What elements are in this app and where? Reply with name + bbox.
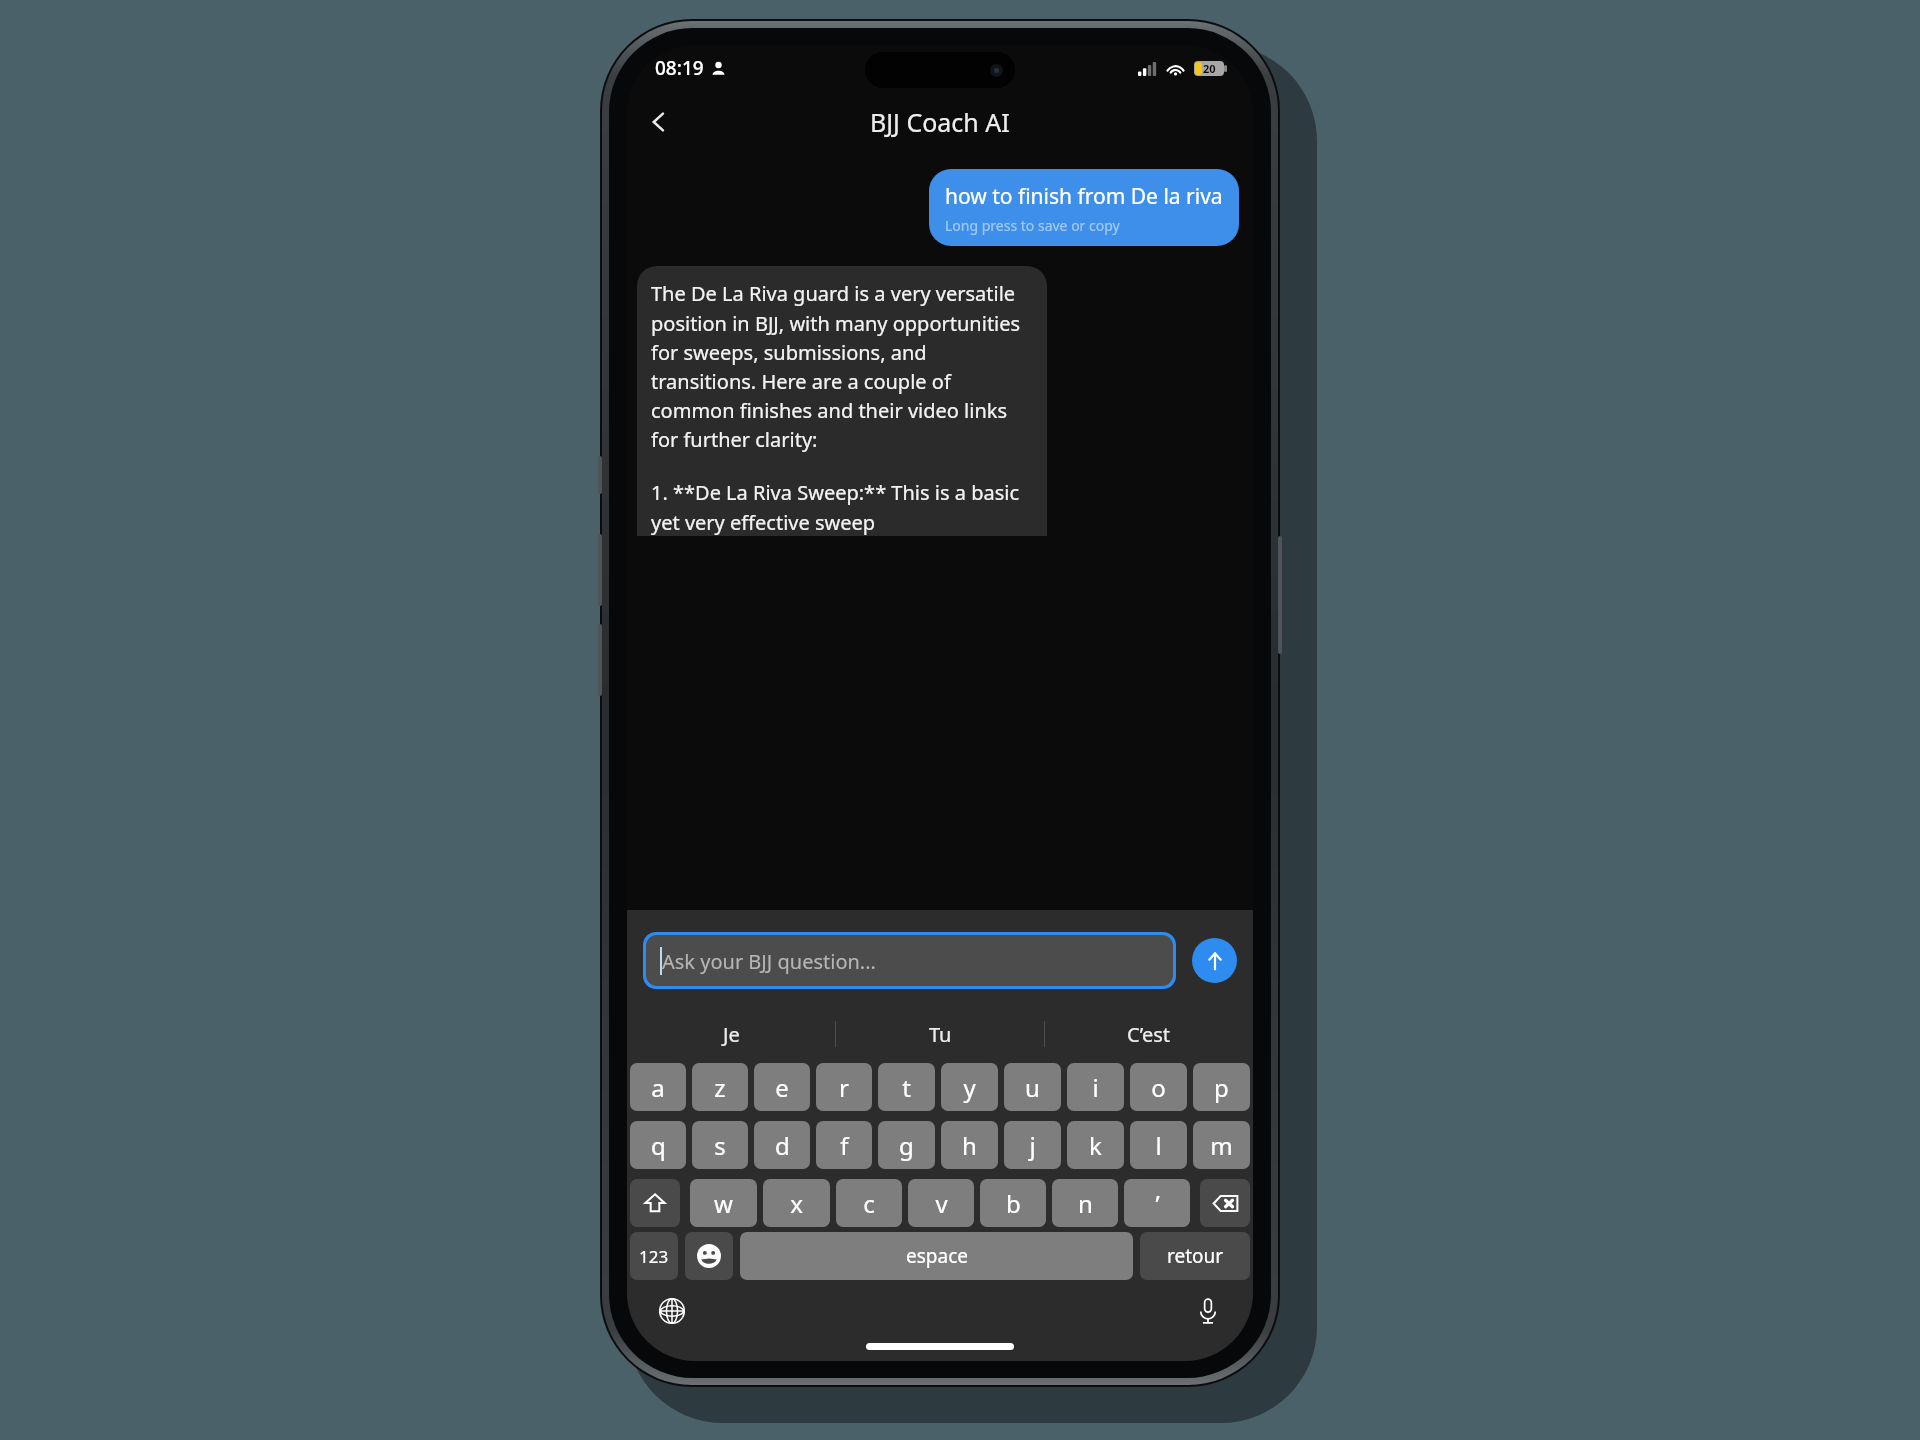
button[interactable]: Shift [630, 1179, 680, 1227]
other: Backspace [1212, 1190, 1239, 1217]
button[interactable]: q [630, 1121, 686, 1169]
button[interactable]: u [1004, 1063, 1061, 1111]
button[interactable]: Tu [836, 1010, 1044, 1058]
button[interactable]: o [1130, 1063, 1187, 1111]
staticText: 1. **De La Riva Sweep:** This is a basic… [651, 479, 1033, 536]
other: Emoji [696, 1243, 722, 1269]
staticText: z [714, 1071, 726, 1104]
button[interactable]: Emoji [685, 1232, 733, 1280]
staticText: v [935, 1187, 948, 1220]
staticText: m [1210, 1129, 1233, 1162]
button[interactable]: j [1004, 1121, 1061, 1169]
button[interactable]: Dictation [1185, 1288, 1231, 1334]
button[interactable]: l [1130, 1121, 1187, 1169]
button[interactable]: p [1193, 1063, 1250, 1111]
staticText: d [775, 1129, 790, 1162]
staticText: 08:19 [655, 55, 704, 81]
button[interactable]: Back [635, 98, 683, 146]
staticText: o [1151, 1071, 1166, 1104]
button[interactable]: y [941, 1063, 998, 1111]
staticText: l [1155, 1129, 1162, 1162]
staticText: y [963, 1071, 976, 1104]
staticText: p [1214, 1071, 1229, 1104]
staticText: r [839, 1071, 849, 1104]
staticText: how to finish from De la riva [945, 182, 1223, 211]
button[interactable]: f [816, 1121, 872, 1169]
staticText: espace [906, 1243, 968, 1269]
button[interactable]: t [878, 1063, 935, 1111]
staticText: Je [723, 1021, 740, 1048]
staticText: w [714, 1187, 733, 1220]
button[interactable]: e [754, 1063, 810, 1111]
button[interactable]: i [1067, 1063, 1124, 1111]
button[interactable]: k [1067, 1121, 1124, 1169]
button[interactable]: Send [1192, 938, 1237, 983]
staticText: BJJ Coach AI [870, 105, 1010, 139]
button[interactable]: m [1193, 1121, 1250, 1169]
button[interactable]: v [908, 1179, 974, 1227]
button[interactable]: w [690, 1179, 757, 1227]
button[interactable]: a [630, 1063, 686, 1111]
button[interactable]: Change keyboard [649, 1288, 695, 1334]
staticText: u [1025, 1071, 1040, 1104]
staticText: n [1078, 1187, 1093, 1220]
button[interactable]: espace [740, 1232, 1133, 1280]
staticText: j [1029, 1129, 1036, 1162]
button[interactable]: Ask your BJJ question... [643, 932, 1176, 989]
button[interactable]: s [692, 1121, 748, 1169]
button[interactable]: g [878, 1121, 935, 1169]
staticText: c [863, 1187, 875, 1220]
staticText: 123 [639, 1245, 669, 1268]
staticText: b [1006, 1187, 1021, 1220]
staticText: e [775, 1071, 789, 1104]
staticText: h [962, 1129, 977, 1162]
staticText: i [1092, 1071, 1099, 1104]
button[interactable]: how to finish from De la riva [929, 169, 1239, 246]
staticText: a [651, 1071, 665, 1104]
staticText: ’ [1155, 1187, 1160, 1220]
button[interactable]: C’est [1045, 1010, 1253, 1058]
button[interactable]: retour [1140, 1232, 1250, 1280]
staticText: The De La Riva guard is a very versatile… [651, 280, 1033, 453]
staticText: t [902, 1071, 911, 1104]
staticText: Ask your BJJ question... [662, 948, 876, 975]
staticText: retour [1167, 1243, 1224, 1269]
staticText: Tu [929, 1021, 952, 1048]
button[interactable]: Je [627, 1010, 835, 1058]
button[interactable]: h [941, 1121, 998, 1169]
staticText: s [714, 1129, 726, 1162]
staticText: x [790, 1187, 803, 1220]
button[interactable]: x [763, 1179, 830, 1227]
button[interactable]: d [754, 1121, 810, 1169]
staticText: C’est [1127, 1021, 1171, 1048]
button[interactable]: 123 [630, 1232, 678, 1280]
staticText: q [651, 1129, 666, 1162]
button[interactable]: The De La Riva guard is a very versatile… [637, 266, 1047, 536]
button[interactable]: n [1052, 1179, 1118, 1227]
button[interactable]: ’ [1124, 1179, 1190, 1227]
staticText: f [840, 1129, 849, 1162]
button[interactable]: c [836, 1179, 902, 1227]
button[interactable]: r [816, 1063, 872, 1111]
button[interactable]: Backspace [1200, 1179, 1250, 1227]
staticText: 20 [1203, 61, 1216, 76]
button[interactable]: z [692, 1063, 748, 1111]
staticText: k [1089, 1129, 1102, 1162]
button[interactable]: b [980, 1179, 1046, 1227]
staticText: g [899, 1129, 914, 1162]
staticText: Long press to save or copy [945, 216, 1120, 235]
other: Shift [643, 1191, 667, 1215]
